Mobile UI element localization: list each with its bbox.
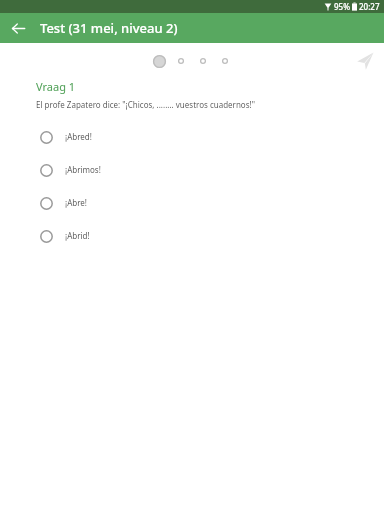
button[interactable]: ¡Abrid! [36,219,368,252]
staticText: 20:27 [359,1,380,12]
button[interactable]: Back [0,13,36,43]
button[interactable]: ¡Abre! [36,186,368,219]
staticText: Test (31 mei, niveau 2) [40,19,178,37]
staticText: ¡Abred! [65,131,92,142]
staticText: ¡Abrimos! [65,164,101,175]
staticText: El profe Zapatero dice: "¡Chicos, ......… [36,99,255,110]
button[interactable]: ¡Abred! [36,120,368,153]
button[interactable]: Question 1 [148,50,170,72]
button[interactable]: Question 3 [192,50,214,72]
staticText: ¡Abre! [65,197,87,208]
button[interactable]: ¡Abrimos! [36,153,368,186]
staticText: Vraag 1 [36,79,76,94]
button[interactable]: Question 4 [214,50,236,72]
button[interactable]: Question 2 [170,50,192,72]
staticText: 95% [334,1,350,12]
staticText: ¡Abrid! [65,230,90,241]
button[interactable]: Send answers [346,45,378,77]
